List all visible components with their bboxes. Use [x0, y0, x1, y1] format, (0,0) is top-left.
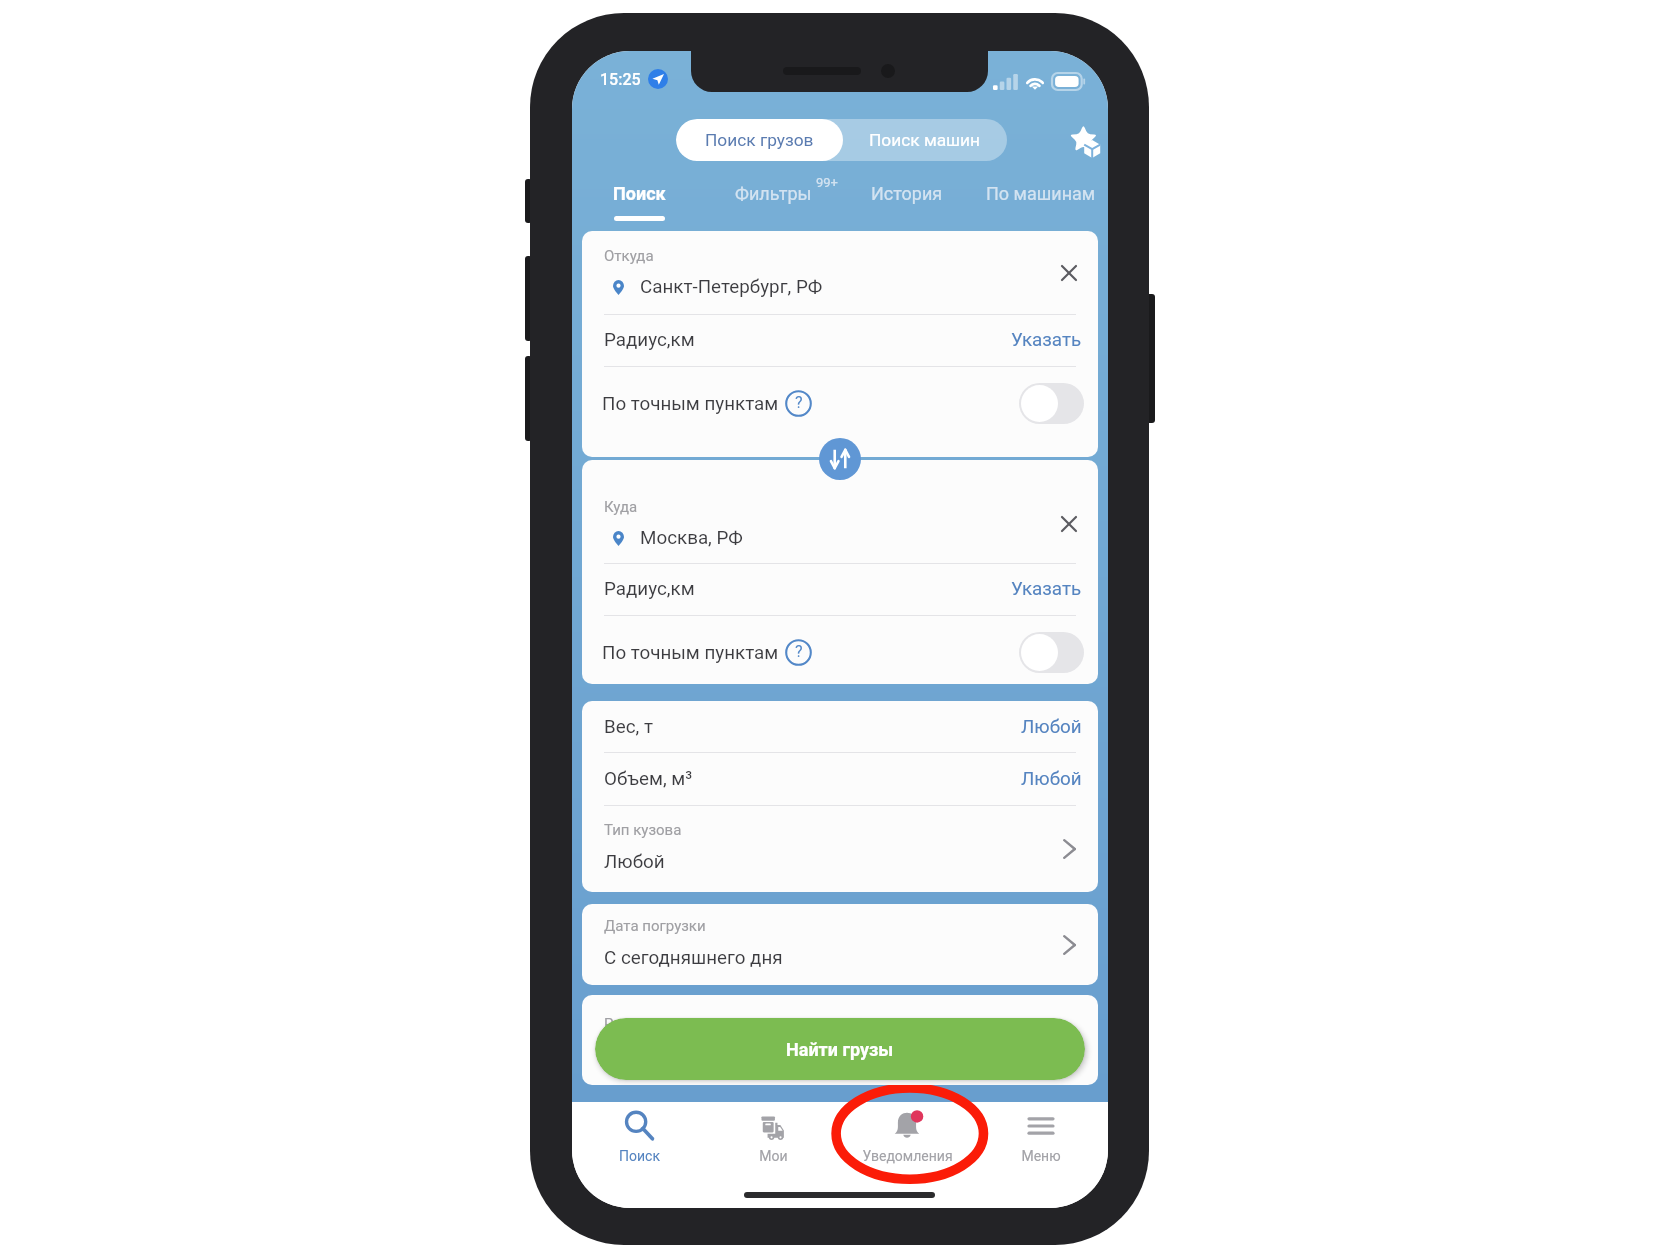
staticText: Любой	[604, 851, 665, 873]
button[interactable]: Вес, т	[582, 701, 1098, 752]
button[interactable]: Откуда	[582, 231, 1098, 314]
staticText: История	[871, 183, 943, 204]
other: Help	[785, 639, 812, 666]
button[interactable]: Clear	[1052, 507, 1086, 541]
staticText: Москва, РФ	[640, 527, 743, 549]
button[interactable]: Уведомления	[840, 1102, 974, 1208]
staticText: Р	[604, 1015, 614, 1033]
staticText: Поиск	[619, 1148, 660, 1164]
button[interactable]: Мои	[706, 1102, 840, 1208]
button[interactable]: Радиус,км	[582, 563, 1098, 615]
button[interactable]: Поиск	[572, 175, 706, 227]
button[interactable]: Объем, м³	[582, 752, 1098, 805]
staticText: Поиск грузов	[705, 130, 814, 150]
button[interactable]: По точным пунктам	[602, 639, 812, 666]
button[interactable]: Swap direction	[819, 438, 861, 480]
staticText: Любой	[1021, 768, 1082, 790]
staticText: ?	[795, 393, 803, 412]
staticText: Найти грузы	[786, 1039, 894, 1060]
staticText: Объем, м³	[604, 768, 693, 790]
staticText: По точным пунктам	[602, 393, 779, 415]
button[interactable]: По точным пунктам	[602, 390, 812, 417]
button[interactable]: Clear	[1052, 256, 1086, 290]
button[interactable]: Toggle exact points	[1019, 383, 1084, 424]
button[interactable]: Радиус,км	[582, 314, 1098, 366]
button[interactable]: Тип кузова	[582, 805, 1098, 892]
staticText: Откуда	[604, 247, 654, 265]
staticText: Радиус,км	[604, 578, 695, 600]
button[interactable]: Toggle exact points	[1019, 632, 1084, 673]
button[interactable]: Дата погрузки	[582, 904, 1098, 985]
staticText: С сегодняшнего дня	[604, 947, 783, 969]
staticText: Радиус,км	[604, 329, 695, 351]
staticText: 15:25	[600, 70, 641, 89]
button[interactable]: Поиск	[572, 1102, 706, 1208]
staticText: Уведомления	[862, 1148, 953, 1164]
staticText: Куда	[604, 498, 638, 516]
staticText: По точным пунктам	[602, 642, 779, 664]
button[interactable]: Куда	[582, 460, 1098, 563]
staticText: Указать	[1011, 329, 1082, 351]
button[interactable]: Меню	[974, 1102, 1108, 1208]
staticText: Вес, т	[604, 716, 653, 738]
staticText: Указать	[1011, 578, 1082, 600]
staticText: Поиск	[613, 183, 666, 204]
staticText: По машинам	[986, 183, 1096, 204]
staticText: Санкт-Петербург, РФ	[640, 276, 823, 298]
other: Help	[785, 390, 812, 417]
staticText: Фильтры	[735, 183, 812, 204]
staticText: 99+	[816, 175, 838, 190]
staticText: Любой	[1021, 716, 1082, 738]
staticText: Поиск машин	[869, 130, 981, 150]
button[interactable]: Favorites	[1062, 119, 1108, 165]
staticText: Мои	[759, 1148, 788, 1164]
button[interactable]: История	[840, 175, 974, 227]
button[interactable]: Поиск грузов	[676, 119, 843, 161]
staticText: ?	[795, 642, 803, 661]
staticText: Тип кузова	[604, 821, 682, 839]
button[interactable]: Найти грузы	[595, 1018, 1085, 1080]
button[interactable]: Фильтры	[706, 175, 840, 227]
staticText: Дата погрузки	[604, 917, 706, 935]
button[interactable]: По машинам	[974, 175, 1108, 227]
staticText: Меню	[1021, 1148, 1061, 1164]
button[interactable]: Поиск машин	[843, 119, 1007, 161]
